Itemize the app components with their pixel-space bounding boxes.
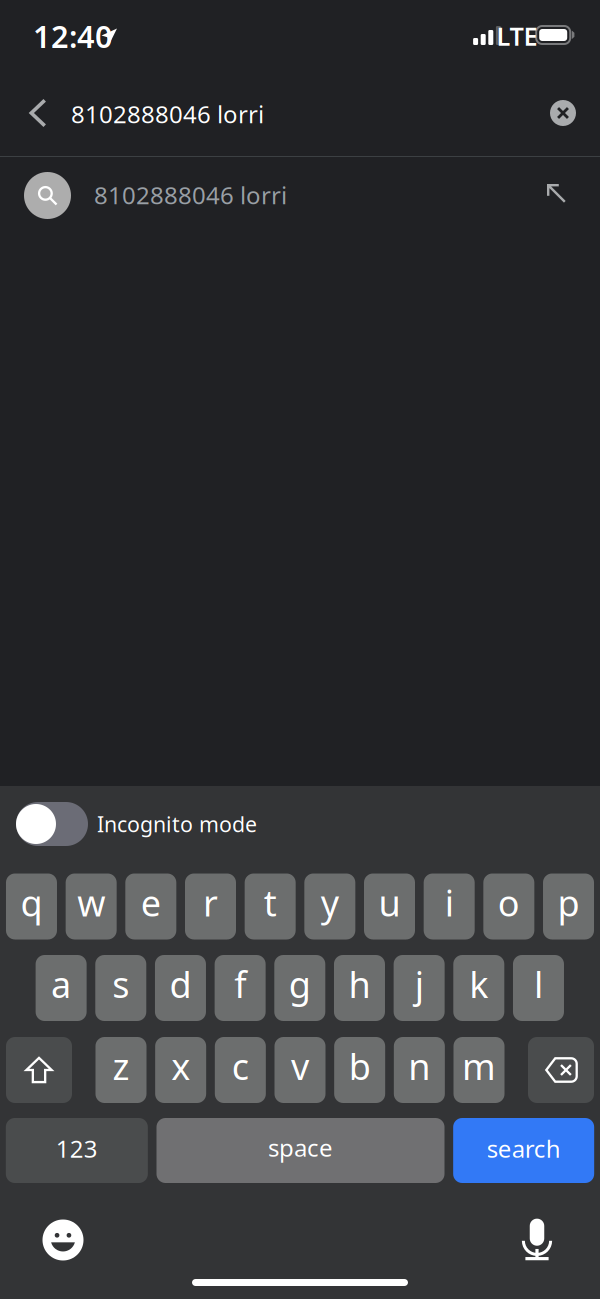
staticText: s — [112, 960, 129, 1008]
button[interactable]: n — [394, 1037, 445, 1103]
button[interactable]: u — [364, 873, 415, 939]
button[interactable]: d — [155, 955, 206, 1021]
staticText: k — [469, 960, 488, 1008]
staticText: x — [171, 1042, 190, 1090]
staticText: z — [112, 1042, 129, 1090]
staticText: i — [445, 879, 454, 926]
staticText: n — [408, 1042, 430, 1090]
staticText: LTE — [496, 19, 537, 53]
staticText: 8102888046 lorri — [71, 98, 264, 130]
staticText: r — [203, 879, 218, 926]
staticText: w — [77, 879, 105, 926]
staticText: l — [534, 960, 543, 1008]
staticText: d — [169, 960, 191, 1008]
button[interactable]: Dictation — [509, 1215, 565, 1263]
button[interactable]: w — [66, 873, 117, 939]
button[interactable]: x — [155, 1037, 206, 1103]
staticText: b — [349, 1042, 371, 1090]
staticText: t — [264, 879, 277, 926]
button[interactable]: g — [274, 955, 325, 1021]
button[interactable]: y — [304, 873, 355, 939]
staticText: Incognito mode — [97, 810, 257, 838]
staticText: search — [487, 1133, 561, 1164]
button[interactable]: s — [95, 955, 146, 1021]
button[interactable]: r — [185, 873, 236, 939]
button[interactable]: j — [394, 955, 445, 1021]
button[interactable]: 123 — [6, 1118, 148, 1183]
button[interactable]: search — [453, 1118, 594, 1183]
button[interactable]: q — [6, 873, 57, 939]
button[interactable]: k — [453, 955, 504, 1021]
staticText: m — [462, 1042, 496, 1090]
staticText: p — [557, 879, 579, 926]
button[interactable]: i — [424, 873, 475, 939]
button[interactable]: h — [334, 955, 385, 1021]
button[interactable]: l — [513, 955, 564, 1021]
button[interactable]: Incognito mode — [16, 802, 88, 846]
button[interactable]: Back — [10, 82, 66, 144]
staticText: v — [291, 1042, 309, 1090]
staticText: u — [378, 879, 400, 926]
button[interactable]: space — [156, 1118, 444, 1183]
button[interactable]: o — [483, 873, 534, 939]
button[interactable]: Emoji keyboard — [35, 1218, 91, 1262]
button[interactable]: z — [95, 1037, 146, 1103]
staticText: g — [289, 960, 311, 1008]
staticText: a — [51, 960, 71, 1008]
staticText: 8102888046 lorri — [94, 179, 287, 211]
button[interactable]: v — [274, 1037, 325, 1103]
button[interactable]: p — [543, 873, 594, 939]
button[interactable]: a — [36, 955, 87, 1021]
button[interactable]: Shift — [6, 1037, 72, 1103]
button[interactable]: b — [334, 1037, 385, 1103]
button[interactable]: Clear search — [533, 82, 593, 144]
staticText: y — [321, 879, 339, 926]
staticText: space — [268, 1132, 333, 1163]
staticText: c — [232, 1042, 249, 1090]
staticText: o — [498, 879, 520, 926]
button[interactable]: f — [215, 955, 266, 1021]
staticText: e — [141, 879, 161, 926]
button[interactable]: c — [215, 1037, 266, 1103]
staticText: f — [234, 960, 246, 1008]
staticText: 123 — [56, 1133, 98, 1164]
button[interactable]: Delete — [528, 1037, 594, 1103]
button[interactable]: t — [245, 873, 296, 939]
staticText: q — [20, 879, 42, 926]
button[interactable]: 8102888046 lorri — [0, 157, 600, 233]
staticText: h — [348, 960, 370, 1008]
staticText: j — [415, 960, 424, 1008]
button[interactable]: m — [453, 1037, 504, 1103]
button[interactable]: e — [125, 873, 176, 939]
staticText: 12:40 — [33, 16, 113, 56]
